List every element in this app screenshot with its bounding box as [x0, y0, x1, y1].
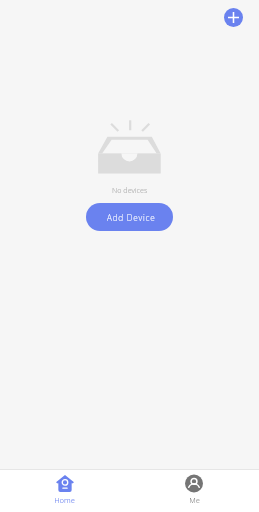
button[interactable]: Add device	[224, 8, 243, 27]
staticText: Home	[54, 495, 75, 505]
button[interactable]: Home	[0, 470, 129, 512]
staticText: Add Device	[107, 212, 156, 223]
staticText: No devices	[112, 185, 148, 195]
button[interactable]: Me	[129, 470, 259, 512]
staticText: Me	[189, 495, 200, 505]
button[interactable]: Add Device	[86, 203, 173, 231]
